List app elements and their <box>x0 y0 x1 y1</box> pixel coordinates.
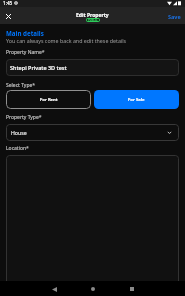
staticText: Select Type* <box>6 82 36 89</box>
button[interactable]: Back <box>49 284 59 294</box>
staticText: Edit Property <box>76 12 109 19</box>
staticText: Location* <box>6 145 29 152</box>
staticText: You can always come back and edit these … <box>6 37 127 44</box>
button[interactable]: For Rent <box>6 90 91 109</box>
button[interactable]: House <box>6 124 179 141</box>
button[interactable]: Save <box>163 7 185 22</box>
button[interactable]: Close <box>4 12 13 21</box>
staticText: House <box>11 129 27 136</box>
button[interactable]: Recent apps <box>127 284 137 294</box>
staticText: Shtepi Private 3D test <box>10 64 67 71</box>
button[interactable]: Shtepi Private 3D test <box>6 59 179 76</box>
button[interactable]: For Sale <box>94 90 179 109</box>
staticText: For Rent <box>40 97 58 103</box>
staticText: Save <box>168 13 181 20</box>
staticText: PUBLIC <box>88 18 98 22</box>
button[interactable]: Home <box>88 284 98 294</box>
staticText: 1:45 <box>3 0 13 6</box>
staticText: For Sale <box>128 97 145 103</box>
staticText: Main details <box>6 29 44 37</box>
staticText: Property Name* <box>6 49 45 56</box>
button[interactable]: Location map <box>6 155 179 295</box>
staticText: Property Type* <box>6 114 42 121</box>
